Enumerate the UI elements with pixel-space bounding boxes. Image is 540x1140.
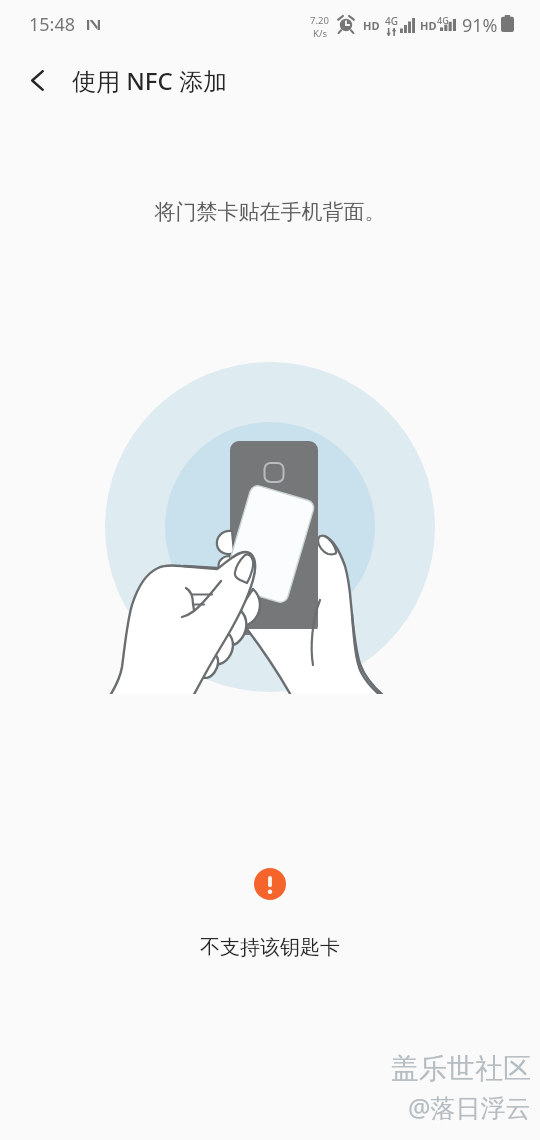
staticText: HD	[363, 18, 380, 33]
staticText: 使用 NFC 添加	[72, 64, 228, 97]
button[interactable]: Back	[0, 49, 72, 111]
staticText: K/s	[313, 27, 327, 40]
staticText: 4G	[437, 14, 449, 26]
staticText: 盖乐世社区	[391, 1051, 531, 1086]
staticText: 7.20	[310, 14, 329, 27]
staticText: 不支持该钥匙卡	[0, 935, 540, 960]
staticText: @落日浮云	[408, 1090, 531, 1124]
staticText: HD	[420, 18, 437, 33]
staticText: 将门禁卡贴在手机背面。	[0, 199, 540, 225]
staticText: 4G	[385, 14, 398, 28]
staticText: 15:48	[29, 12, 76, 37]
staticText: 91%	[462, 13, 498, 38]
